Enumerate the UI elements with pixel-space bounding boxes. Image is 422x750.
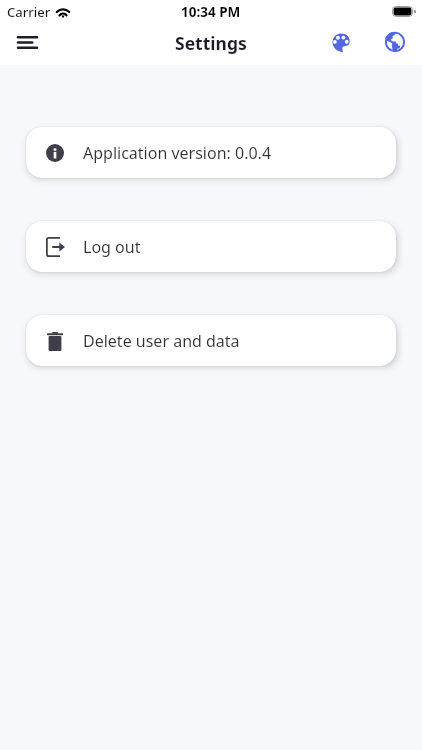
button[interactable]: Delete user and data <box>26 315 396 366</box>
staticText: Settings <box>175 31 247 55</box>
staticText: Delete user and data <box>83 330 240 352</box>
button[interactable]: Menu <box>8 23 46 61</box>
button[interactable]: Log out <box>26 221 396 272</box>
staticText: 10:34 PM <box>181 3 241 21</box>
staticText: Carrier <box>7 3 51 21</box>
button[interactable]: Theme <box>322 23 360 61</box>
button[interactable]: Language <box>376 23 414 61</box>
staticText: Log out <box>83 236 141 258</box>
button[interactable]: Application version: 0.0.4 <box>26 127 396 178</box>
staticText: Application version: 0.0.4 <box>83 142 272 164</box>
